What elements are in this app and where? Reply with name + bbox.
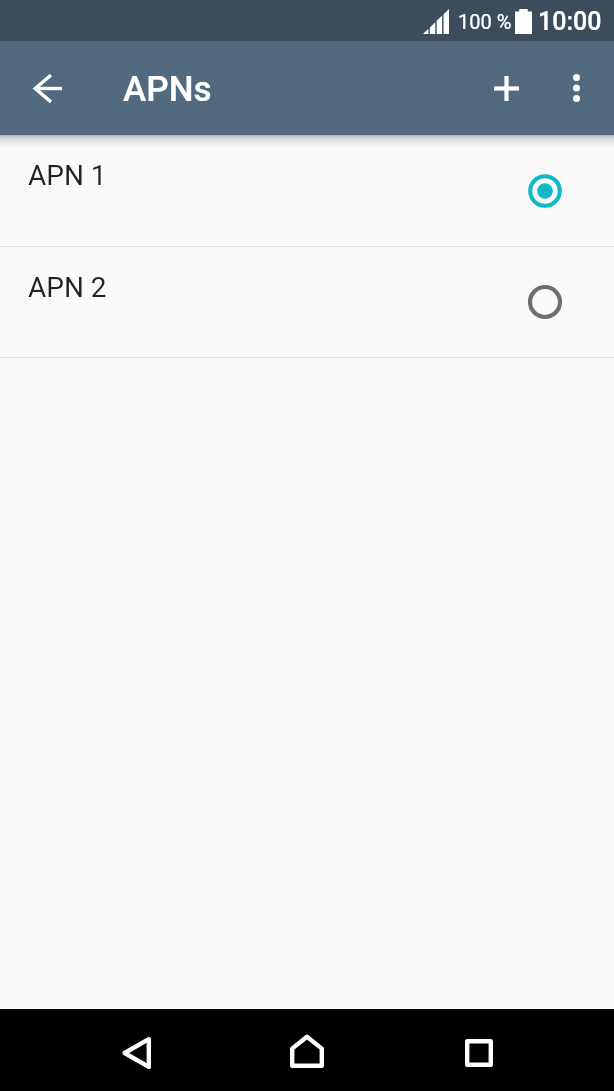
button[interactable]: More options: [542, 52, 614, 124]
button[interactable]: APN 2: [0, 247, 614, 357]
button[interactable]: APN 1: [0, 135, 614, 246]
staticText: 100 %: [458, 10, 512, 33]
staticText: APNs: [123, 69, 212, 110]
button[interactable]: Home: [266, 1010, 347, 1091]
staticText: 10:00: [538, 7, 602, 36]
staticText: APN 2: [28, 271, 107, 304]
button[interactable]: Back: [96, 1014, 177, 1091]
staticText: APN 1: [28, 159, 107, 192]
button[interactable]: Add: [470, 52, 542, 124]
button[interactable]: Navigate up: [12, 52, 84, 124]
button[interactable]: Recents: [438, 1014, 519, 1091]
